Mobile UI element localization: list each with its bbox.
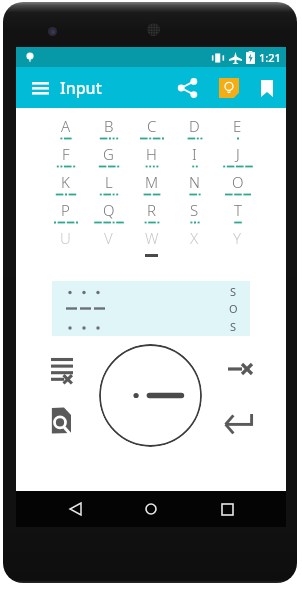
staticText: L: [105, 172, 113, 192]
staticText: C: [147, 116, 157, 136]
staticText: R: [147, 200, 156, 220]
staticText: A: [61, 116, 71, 136]
button[interactable]: D: [173, 116, 216, 140]
button[interactable]: Enter: [223, 406, 255, 438]
button[interactable]: W: [130, 228, 173, 246]
button[interactable]: Q: [87, 200, 130, 224]
staticText: K: [61, 172, 70, 192]
staticText: V: [104, 228, 113, 246]
button[interactable]: F: [44, 144, 87, 168]
button[interactable]: N: [173, 172, 216, 196]
staticText: S: [230, 319, 237, 334]
staticText: F: [62, 144, 70, 164]
staticText: H: [146, 144, 157, 164]
button[interactable]: Clear all: [46, 353, 78, 385]
button[interactable]: Morse key: [99, 344, 202, 447]
staticText: Q: [103, 200, 115, 220]
button[interactable]: Delete: [224, 353, 256, 385]
button[interactable]: Find: [44, 404, 76, 436]
button[interactable]: Recents: [210, 492, 244, 526]
staticText: U: [60, 228, 71, 246]
staticText: X: [190, 228, 199, 246]
button[interactable]: Back: [58, 492, 92, 526]
staticText: I: [192, 144, 197, 164]
button[interactable]: H: [130, 144, 173, 168]
button[interactable]: K: [44, 172, 87, 196]
button[interactable]: O: [216, 172, 259, 196]
button[interactable]: M: [130, 172, 173, 196]
button[interactable]: S: [173, 200, 216, 224]
button[interactable]: X: [173, 228, 216, 246]
staticText: E: [233, 116, 242, 136]
button[interactable]: L: [87, 172, 130, 196]
staticText: B: [104, 116, 114, 136]
staticText: T: [234, 200, 242, 220]
staticText: O: [232, 172, 244, 192]
staticText: W: [145, 228, 159, 246]
staticText: G: [103, 144, 114, 164]
staticText: Input: [60, 77, 102, 99]
staticText: S: [190, 200, 199, 220]
button[interactable]: J: [216, 144, 259, 168]
button[interactable]: P: [44, 200, 87, 224]
button[interactable]: A: [44, 116, 87, 140]
staticText: P: [61, 200, 70, 220]
button[interactable]: Hint: [212, 70, 245, 106]
staticText: J: [236, 144, 240, 164]
staticText: N: [189, 172, 200, 192]
button[interactable]: R: [130, 200, 173, 224]
button[interactable]: Menu: [24, 72, 56, 104]
button[interactable]: Home: [134, 492, 168, 526]
button[interactable]: Y: [216, 228, 259, 246]
staticText: M: [145, 172, 159, 192]
button[interactable]: Bookmark: [250, 70, 284, 106]
button[interactable]: E: [216, 116, 259, 140]
button[interactable]: I: [173, 144, 216, 168]
staticText: O: [229, 301, 238, 316]
button[interactable]: G: [87, 144, 130, 168]
staticText: Y: [233, 228, 242, 246]
staticText: D: [189, 116, 200, 136]
button[interactable]: T: [216, 200, 259, 224]
button[interactable]: B: [87, 116, 130, 140]
button[interactable]: Share: [169, 70, 205, 106]
button[interactable]: C: [130, 116, 173, 140]
staticText: S: [230, 284, 237, 299]
button[interactable]: V: [87, 228, 130, 246]
staticText: 1:21: [259, 50, 281, 65]
button[interactable]: U: [44, 228, 87, 246]
